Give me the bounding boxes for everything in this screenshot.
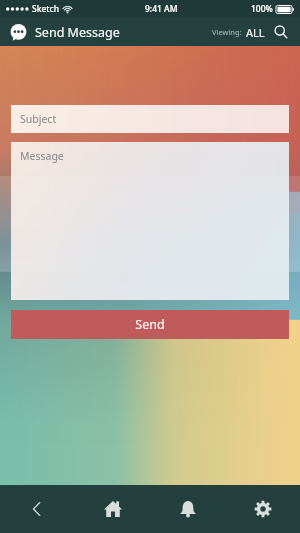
button[interactable]: Home	[75, 485, 150, 533]
button[interactable]: Settings	[225, 485, 300, 533]
button[interactable]: Message	[11, 142, 289, 300]
button[interactable]: Subject	[11, 105, 289, 133]
button[interactable]: Search	[272, 23, 290, 41]
staticText: Send	[135, 316, 165, 333]
button[interactable]: Back	[0, 485, 75, 533]
staticText: 100%	[251, 3, 273, 15]
button[interactable]: Notifications	[150, 485, 225, 533]
staticText: Message	[20, 149, 64, 163]
staticText: 9:41 AM	[145, 3, 178, 15]
staticText: Send Message	[35, 24, 120, 41]
staticText: Subject	[20, 112, 57, 126]
staticText: ALL	[246, 25, 265, 40]
button[interactable]: Send	[11, 310, 289, 339]
staticText: Sketch	[32, 3, 60, 15]
staticText: Viewing:	[212, 27, 242, 37]
